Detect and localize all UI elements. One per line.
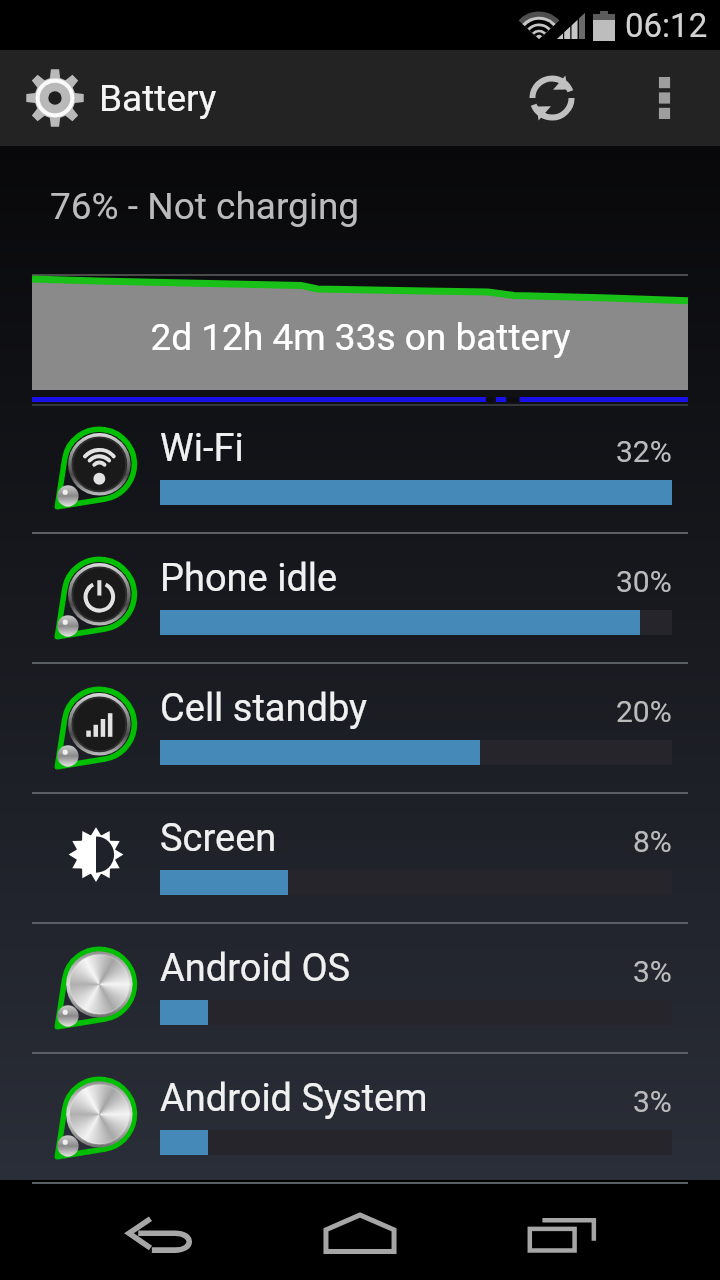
button[interactable]: Android OS	[0, 924, 720, 1054]
staticText: 30%	[616, 564, 672, 599]
staticText: 20%	[616, 694, 672, 729]
button[interactable]: More options	[608, 50, 720, 146]
button[interactable]: Screen	[0, 794, 720, 924]
staticText: Android OS	[160, 946, 351, 991]
button[interactable]: Battery	[0, 50, 231, 146]
staticText: 8%	[633, 824, 672, 859]
staticText: Battery	[99, 77, 217, 120]
staticText: Android System	[160, 1076, 428, 1121]
staticText: 3%	[633, 954, 672, 989]
staticText: Screen	[160, 816, 277, 861]
button[interactable]: Home	[270, 1184, 450, 1280]
staticText: 06:12	[625, 6, 708, 45]
staticText: 76% - Not charging	[50, 185, 360, 228]
button[interactable]: Wi-Fi	[0, 404, 720, 534]
staticText: 2d 12h 4m 33s on battery	[150, 316, 571, 359]
button[interactable]: Recent apps	[472, 1184, 652, 1280]
button[interactable]: Cell standby	[0, 664, 720, 794]
button[interactable]: Refresh	[496, 50, 608, 146]
staticText: Wi-Fi	[160, 426, 244, 471]
button[interactable]: Phone idle	[0, 534, 720, 664]
staticText: 3%	[633, 1084, 672, 1119]
staticText: Cell standby	[160, 686, 368, 731]
button[interactable]: Back	[70, 1184, 250, 1280]
staticText: 32%	[616, 434, 672, 469]
button[interactable]: Android System	[0, 1054, 720, 1184]
staticText: Phone idle	[160, 556, 338, 601]
